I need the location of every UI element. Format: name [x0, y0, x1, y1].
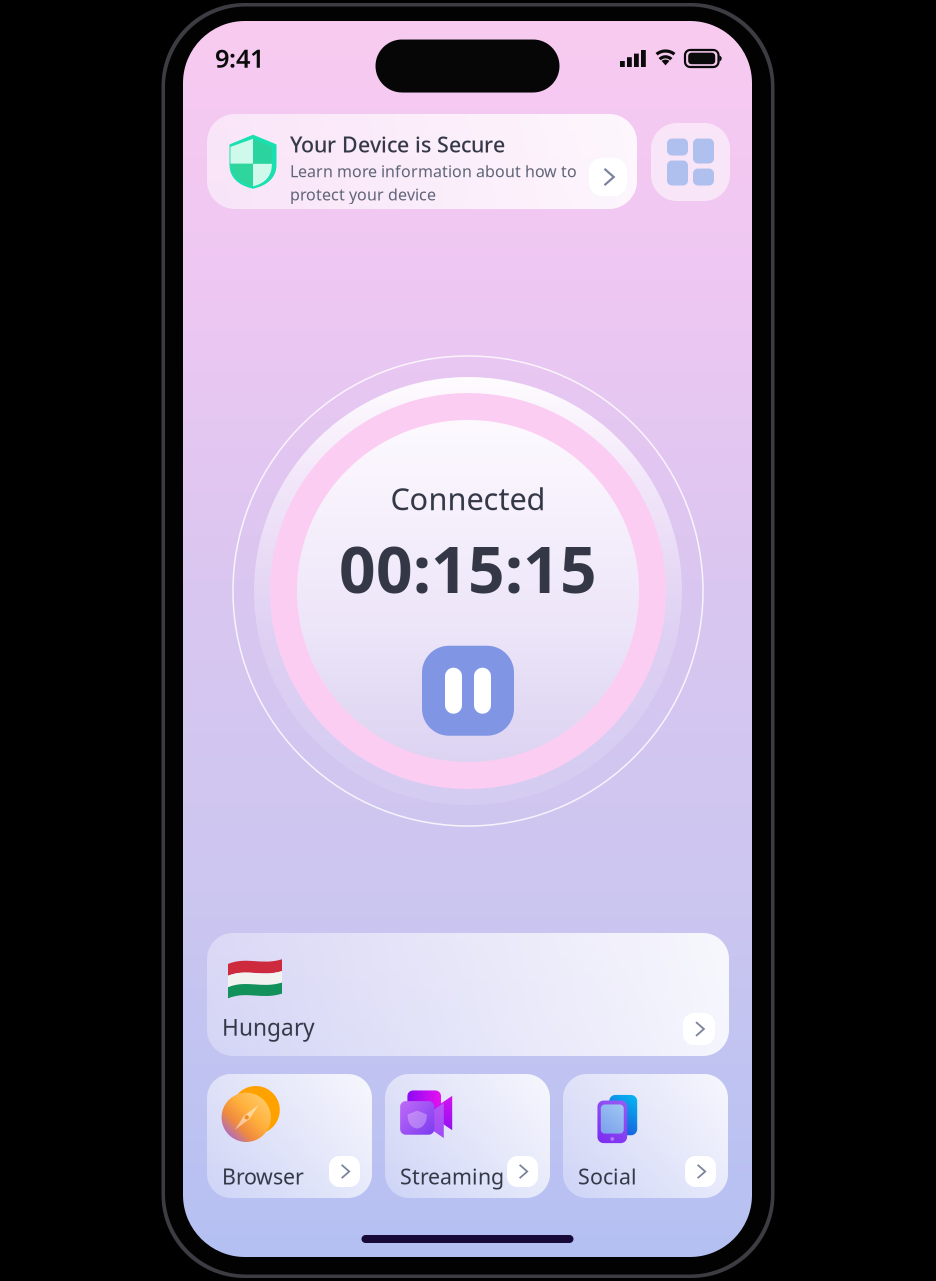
- staticText: Social: [578, 1162, 637, 1190]
- staticText: Learn more information about how to: [290, 160, 577, 181]
- staticText: 00:15:15: [339, 526, 597, 611]
- staticText: 9:41: [215, 41, 264, 75]
- staticText: protect your device: [290, 184, 436, 205]
- button[interactable]: Dashboard: [651, 123, 730, 201]
- button[interactable]: Pause VPN: [422, 646, 514, 736]
- button[interactable]: Social: [563, 1074, 728, 1198]
- button[interactable]: Your Device is Secure: [207, 114, 637, 209]
- staticText: Connected: [390, 478, 545, 519]
- button[interactable]: Streaming: [385, 1074, 550, 1198]
- staticText: Browser: [222, 1162, 304, 1190]
- button[interactable]: Browser: [207, 1074, 372, 1198]
- staticText: Hungary: [222, 1012, 315, 1042]
- button[interactable]: Hungary: [207, 933, 729, 1056]
- staticText: Streaming: [400, 1162, 504, 1190]
- staticText: Your Device is Secure: [290, 130, 505, 158]
